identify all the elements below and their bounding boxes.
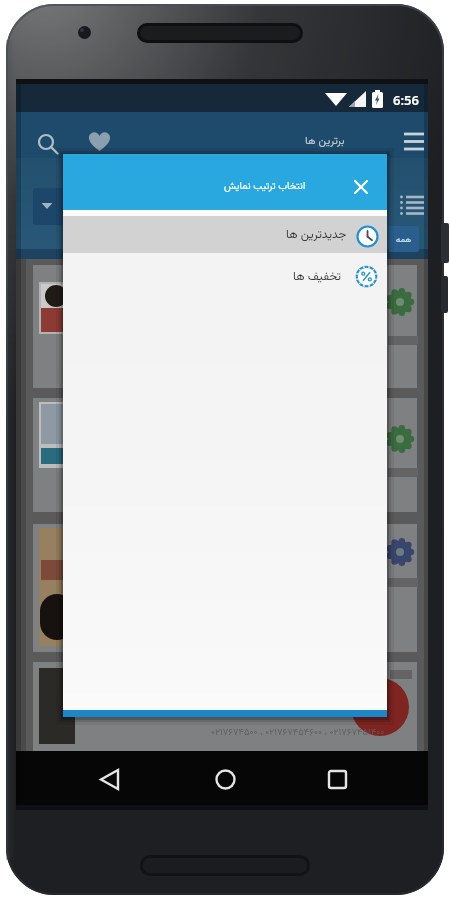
button[interactable] <box>63 216 387 253</box>
staticText: انتخاب ترتیب نمایش <box>224 179 306 195</box>
button[interactable] <box>63 253 387 300</box>
button[interactable] <box>36 132 62 158</box>
staticText: تخفیف ها <box>293 268 342 287</box>
button[interactable] <box>351 177 371 197</box>
staticText: جدیدترین ها <box>286 226 347 245</box>
button[interactable] <box>98 768 123 791</box>
button[interactable] <box>403 130 425 154</box>
staticText: برترین ها <box>305 133 345 150</box>
staticText: همه <box>396 233 412 246</box>
button[interactable] <box>86 130 113 154</box>
staticText: 6:56 <box>393 91 419 107</box>
staticText: ۰۲۱۷۶۷۴۵۰۰ ، ۰۲۱۷۶۷۴۵۴۶۰۰ ، ۰۲۱۷۶۷۴۵۱۴۰۰ <box>211 725 385 740</box>
button[interactable] <box>214 768 237 791</box>
button[interactable] <box>327 769 348 790</box>
